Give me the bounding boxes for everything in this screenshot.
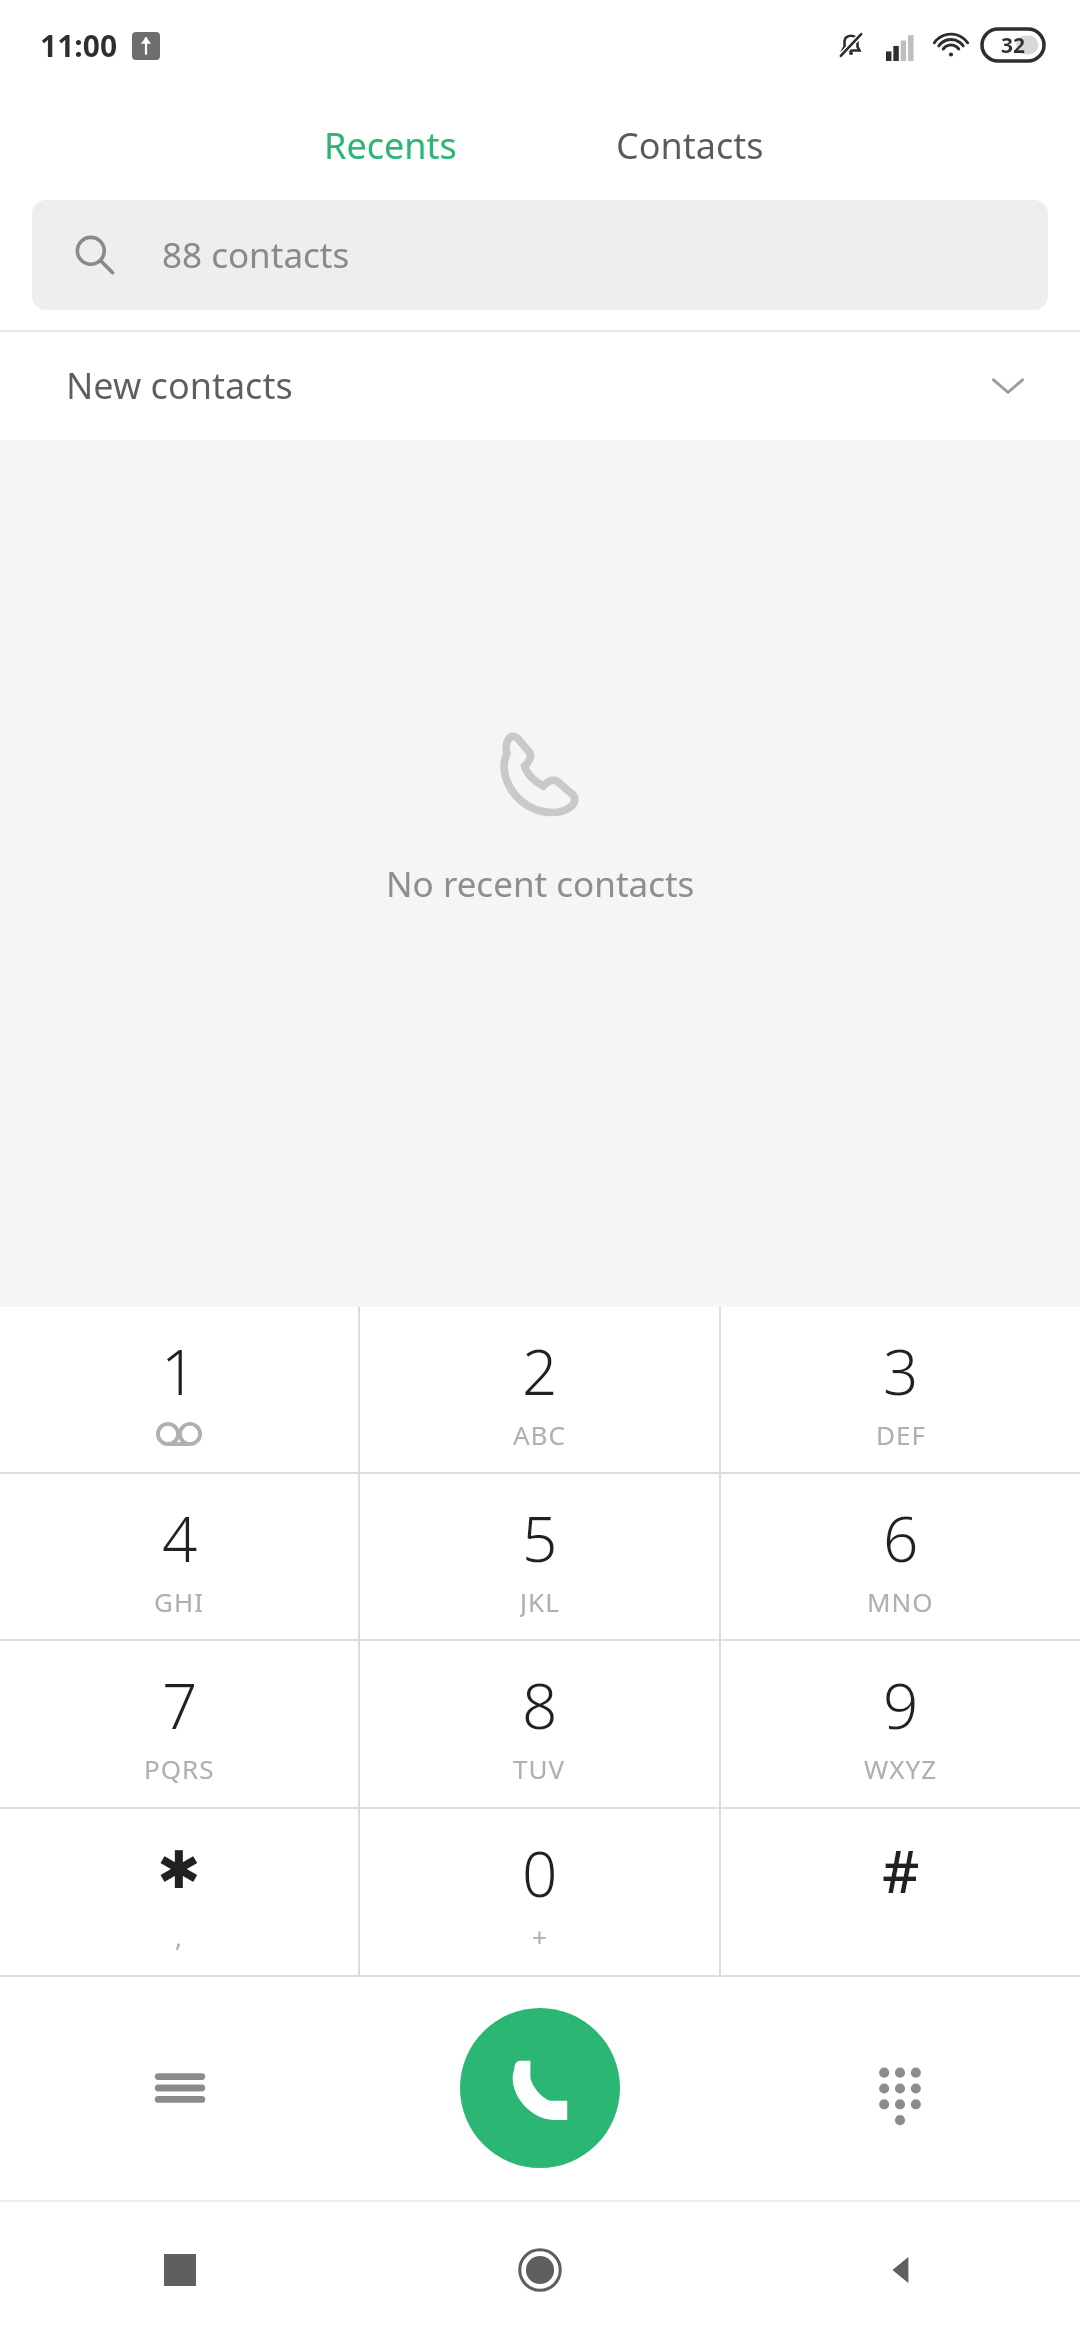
staticText: 88 contacts	[162, 231, 350, 279]
staticText: 6	[883, 1496, 919, 1574]
staticText: WXYZ	[864, 1751, 938, 1785]
button[interactable]: 5	[360, 1474, 719, 1639]
button[interactable]: 3	[721, 1307, 1080, 1472]
staticText: +	[532, 1919, 548, 1953]
staticText: New contacts	[66, 361, 293, 410]
staticText: PQRS	[144, 1751, 215, 1785]
staticText: No recent contacts	[386, 860, 695, 908]
staticText: 7	[162, 1663, 198, 1741]
staticText: MNO	[867, 1584, 934, 1618]
button[interactable]: 6	[721, 1474, 1080, 1639]
button[interactable]: 4	[0, 1474, 358, 1639]
staticText: 0	[522, 1831, 558, 1909]
button[interactable]: Menu	[0, 1975, 360, 2200]
button[interactable]: 9	[721, 1641, 1080, 1807]
staticText: 9	[883, 1663, 919, 1741]
button[interactable]: 1	[0, 1307, 358, 1472]
staticText: TUV	[513, 1751, 566, 1785]
staticText: ✱	[157, 1840, 201, 1901]
staticText: ABC	[513, 1417, 566, 1451]
button[interactable]: Contacts	[540, 90, 840, 200]
button[interactable]: Call	[460, 2008, 620, 2168]
button[interactable]: Recents	[0, 2200, 360, 2340]
staticText: Recents	[324, 121, 457, 170]
staticText: 3	[883, 1329, 919, 1407]
staticText: 5	[522, 1496, 558, 1574]
staticText: Contacts	[616, 121, 764, 170]
button[interactable]: 8	[360, 1641, 719, 1807]
button[interactable]: Home	[360, 2200, 720, 2340]
button[interactable]: Dialpad	[720, 1975, 1080, 2200]
button[interactable]: Recents	[240, 90, 540, 200]
button[interactable]: New contacts	[0, 330, 1080, 440]
staticText: DEF	[876, 1417, 926, 1451]
staticText: 11:00	[40, 25, 118, 66]
button[interactable]: 88 contacts	[32, 200, 1048, 310]
button[interactable]: Back	[720, 2200, 1080, 2340]
staticText: JKL	[520, 1584, 560, 1618]
button[interactable]: 0	[360, 1809, 719, 1975]
staticText: ,	[175, 1919, 183, 1953]
staticText: 1	[161, 1329, 197, 1407]
button[interactable]: ✱	[0, 1809, 358, 1975]
button[interactable]: #	[721, 1809, 1080, 1975]
staticText: #	[882, 1831, 920, 1909]
button[interactable]: 7	[0, 1641, 358, 1807]
staticText: 2	[522, 1329, 558, 1407]
staticText: 8	[522, 1663, 558, 1741]
staticText: 4	[162, 1496, 198, 1574]
button[interactable]: 2	[360, 1307, 719, 1472]
staticText: 32	[1001, 31, 1026, 60]
staticText: GHI	[154, 1584, 205, 1618]
